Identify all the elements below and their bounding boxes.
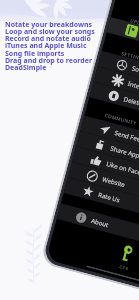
staticText: Song file imports <box>5 49 65 59</box>
staticText: UPGRADE <box>130 17 139 30</box>
button[interactable]: Upgrade to Pro <box>106 17 139 66</box>
staticText: Sound <box>131 63 139 76</box>
button[interactable]: Website <box>68 162 139 211</box>
staticText: Record and notate audio <box>5 34 91 44</box>
staticText: Drag and drop to reorder <box>5 56 93 66</box>
staticText: DeadSimple <box>5 63 47 73</box>
button[interactable]: Share App <box>76 131 139 180</box>
button[interactable]: Interface <box>93 66 139 115</box>
staticText: COMMUNITY <box>104 112 138 126</box>
staticText: Loop and slow your songs <box>5 27 95 37</box>
staticText: About <box>90 216 110 228</box>
staticText: 2.2.6 <box>119 264 130 271</box>
button[interactable]: Delete All <box>89 82 139 130</box>
staticText: iTunes and Apple Music <box>5 41 87 51</box>
staticText: SETTINGS <box>121 50 139 62</box>
staticText: Send Feedback <box>114 128 139 147</box>
staticText: Delete All <box>123 94 139 109</box>
button[interactable]: About <box>56 203 139 252</box>
button[interactable]: Sound <box>97 51 139 99</box>
staticText: Notate your breakdowns <box>5 20 93 30</box>
staticText: Like on Facebook <box>106 159 139 180</box>
staticText: Rate Us <box>97 190 122 204</box>
staticText: Share App <box>110 144 139 159</box>
staticText: Website <box>101 174 127 188</box>
staticText: Interface <box>127 79 139 93</box>
button[interactable]: Like on Facebook <box>72 146 139 195</box>
button[interactable]: Send Feedback <box>80 115 139 164</box>
button[interactable]: Rate Us <box>63 177 139 226</box>
